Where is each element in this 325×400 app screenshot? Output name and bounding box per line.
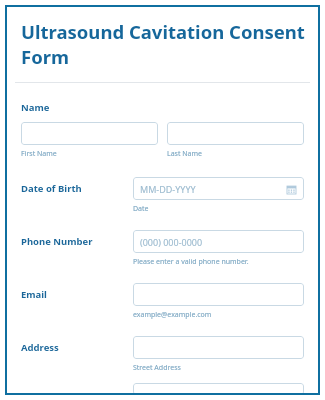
staticText: First Name: [21, 149, 57, 159]
staticText: Email: [21, 288, 47, 301]
button[interactable]: [21, 122, 158, 145]
button[interactable]: Pick date: [285, 183, 297, 195]
staticText: Date of Birth: [21, 182, 82, 195]
staticText: Address: [21, 341, 59, 354]
staticText: Phone Number: [21, 235, 93, 248]
staticText: Street Address: [133, 363, 181, 373]
staticText: (000) 000-0000: [140, 236, 203, 248]
staticText: Last Name: [167, 149, 203, 159]
staticText: Please enter a valid phone number.: [133, 257, 249, 267]
button[interactable]: [133, 283, 304, 306]
staticText: MM-DD-YYYY: [140, 183, 196, 195]
button[interactable]: [133, 336, 304, 359]
staticText: Ultrasound Cavitation Consent Form: [21, 19, 310, 69]
button[interactable]: MM-DD-YYYY: [133, 177, 304, 200]
button[interactable]: (000) 000-0000: [133, 230, 304, 253]
staticText: Name: [21, 101, 50, 114]
staticText: Date: [133, 204, 149, 214]
staticText: example@example.com: [133, 310, 212, 320]
button[interactable]: [133, 383, 304, 395]
button[interactable]: [167, 122, 304, 145]
